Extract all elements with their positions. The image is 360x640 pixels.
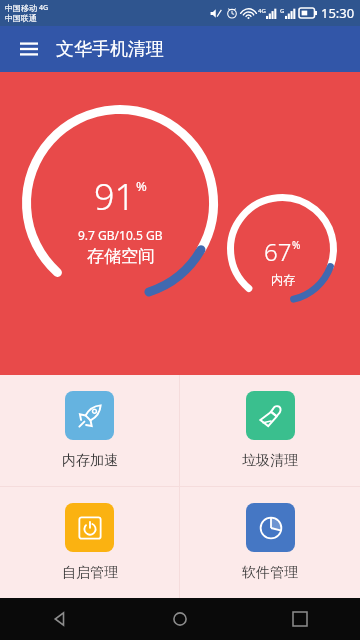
button[interactable]: 内存加速 xyxy=(0,375,179,486)
button[interactable]: 91 xyxy=(22,105,218,301)
staticText: G xyxy=(280,7,285,15)
staticText: 中国移动 xyxy=(5,3,37,13)
staticText: 存储空间 xyxy=(87,246,155,267)
staticText: 文华手机清理 xyxy=(56,38,164,61)
staticText: 9.7 GB/10.5 GB xyxy=(78,227,163,243)
button[interactable]: Home xyxy=(120,598,240,640)
button[interactable]: Recent apps xyxy=(240,598,360,640)
staticText: 软件管理 xyxy=(242,564,298,582)
button[interactable]: Open navigation menu xyxy=(14,34,44,64)
staticText: 自启管理 xyxy=(62,564,118,582)
button[interactable]: 软件管理 xyxy=(180,487,360,598)
staticText: 91 xyxy=(94,172,136,221)
staticText: % xyxy=(292,238,301,252)
button[interactable]: Back xyxy=(0,598,120,640)
staticText: 内存 xyxy=(271,272,295,287)
staticText: 15:30 xyxy=(321,4,355,22)
staticText: 67 xyxy=(264,235,292,268)
staticText: 中国联通 xyxy=(5,13,37,23)
button[interactable]: 自启管理 xyxy=(0,487,179,598)
button[interactable]: 67 xyxy=(227,194,337,304)
staticText: 4G xyxy=(258,7,266,15)
staticText: 垃圾清理 xyxy=(242,452,298,470)
staticText: 4G xyxy=(39,3,49,13)
staticText: % xyxy=(136,177,147,195)
button[interactable]: 垃圾清理 xyxy=(180,375,360,486)
staticText: 内存加速 xyxy=(62,452,118,470)
